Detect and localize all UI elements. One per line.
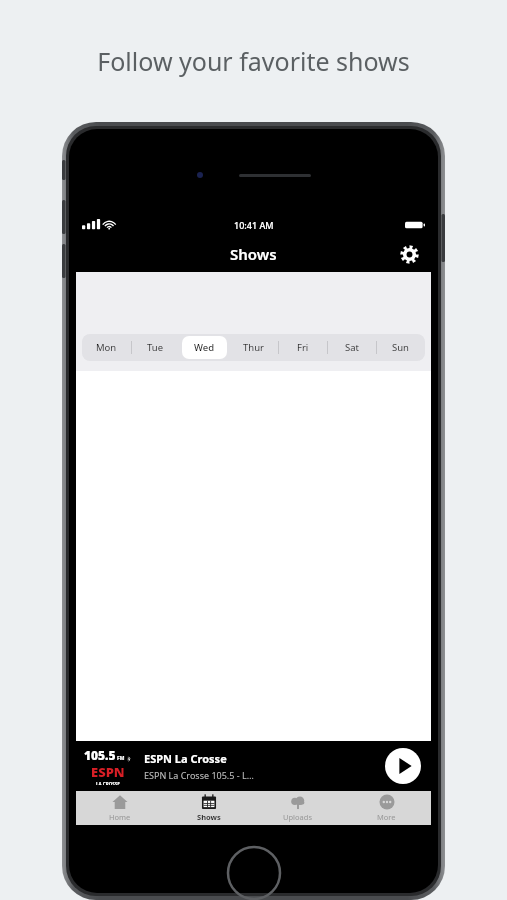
staticText: ESPN La Crosse bbox=[144, 751, 227, 766]
button[interactable]: Shows bbox=[164, 791, 253, 825]
button[interactable]: Fri bbox=[280, 336, 325, 359]
button[interactable]: Sun bbox=[378, 336, 423, 359]
staticText: ESPN La Crosse 105.5 - L… bbox=[144, 769, 254, 781]
staticText: Sun bbox=[392, 341, 409, 354]
staticText: Mon bbox=[96, 341, 117, 354]
staticText: More bbox=[377, 812, 396, 822]
staticText: 10:41 AM bbox=[234, 219, 274, 231]
staticText: Uploads bbox=[283, 812, 312, 822]
button[interactable]: Play bbox=[385, 748, 421, 784]
button[interactable]: Sat bbox=[329, 336, 374, 359]
button[interactable]: Settings bbox=[393, 238, 425, 270]
staticText: Follow your favorite shows bbox=[97, 44, 410, 78]
button[interactable]: Home bbox=[76, 791, 164, 825]
staticText: Home bbox=[109, 812, 131, 822]
staticText: Sat bbox=[345, 341, 359, 354]
staticText: Fri bbox=[297, 341, 309, 354]
staticText: FM bbox=[117, 755, 125, 762]
staticText: Thur bbox=[243, 341, 264, 354]
staticText: Tue bbox=[147, 341, 164, 354]
button[interactable]: Tue bbox=[133, 336, 178, 359]
button[interactable]: 105.5 bbox=[76, 741, 431, 791]
staticText: 105.5 bbox=[84, 747, 116, 763]
staticText: Shows bbox=[230, 244, 277, 264]
button[interactable]: More bbox=[342, 791, 431, 825]
button[interactable]: Mon bbox=[84, 336, 129, 359]
button[interactable]: Wed bbox=[182, 336, 227, 359]
button[interactable]: Thur bbox=[231, 336, 276, 359]
staticText: LA CROSSE bbox=[96, 781, 120, 785]
staticText: ESPN bbox=[91, 763, 125, 781]
button[interactable]: Uploads bbox=[253, 791, 342, 825]
staticText: Wed bbox=[194, 341, 215, 354]
staticText: Shows bbox=[197, 812, 221, 822]
